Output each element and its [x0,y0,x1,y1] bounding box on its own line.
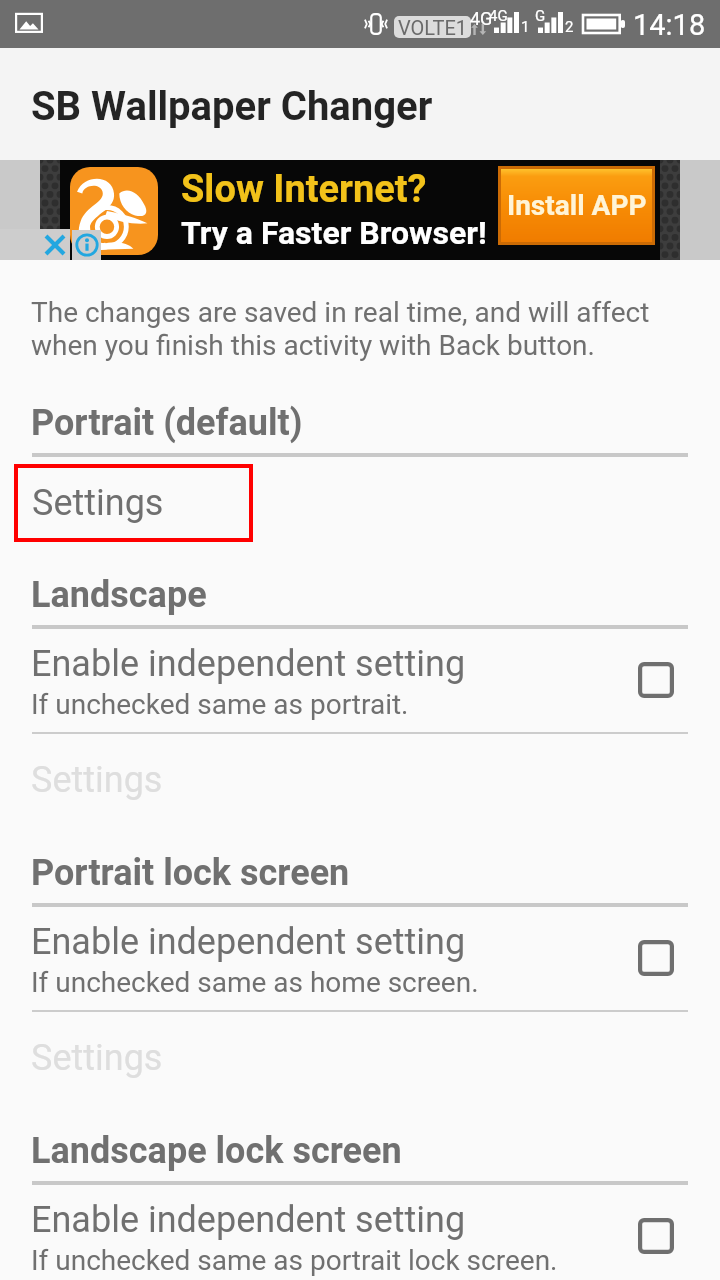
staticText: Install APP [507,189,647,222]
button[interactable]: Install APP [501,169,652,242]
staticText: Try a Faster Browser! [181,214,487,252]
staticText: 1 [521,18,530,36]
staticText: VOLTE1 [398,16,467,38]
staticText: Landscape [31,574,207,616]
staticText: Settings [32,482,164,524]
button[interactable]: Enable independent setting [0,629,720,734]
staticText: Landscape lock screen [31,1130,402,1172]
button[interactable]: Ad info [72,230,101,260]
button[interactable]: Slow Internet? [40,160,680,260]
button[interactable]: Settings [0,734,720,825]
button[interactable]: Enable independent setting [0,1185,720,1280]
staticText: 4G [489,7,508,25]
staticText: The changes are saved in real time, and … [31,296,684,362]
staticText: Portrait (default) [31,402,303,444]
staticText: If unchecked same as home screen. [31,966,479,999]
staticText: Settings [31,759,163,801]
staticText: Enable independent setting [31,643,466,685]
staticText: If unchecked same as portrait. [31,688,409,721]
button[interactable]: Enable independent setting [0,907,720,1012]
button[interactable]: Settings [18,468,249,538]
staticText: G [535,7,546,25]
staticText: If unchecked same as portrait lock scree… [31,1244,558,1277]
staticText: 4G [470,8,493,29]
staticText: Settings [31,1037,163,1079]
staticText: Portrait lock screen [31,852,350,894]
staticText: Slow Internet? [181,167,427,212]
staticText: Enable independent setting [31,1199,466,1241]
staticText: Enable independent setting [31,921,466,963]
staticText: 14:18 [633,8,706,42]
button[interactable]: Close ad [0,229,70,260]
staticText: 2 [565,18,574,36]
staticText: SB Wallpaper Changer [31,83,433,130]
button[interactable]: Settings [0,1012,720,1103]
